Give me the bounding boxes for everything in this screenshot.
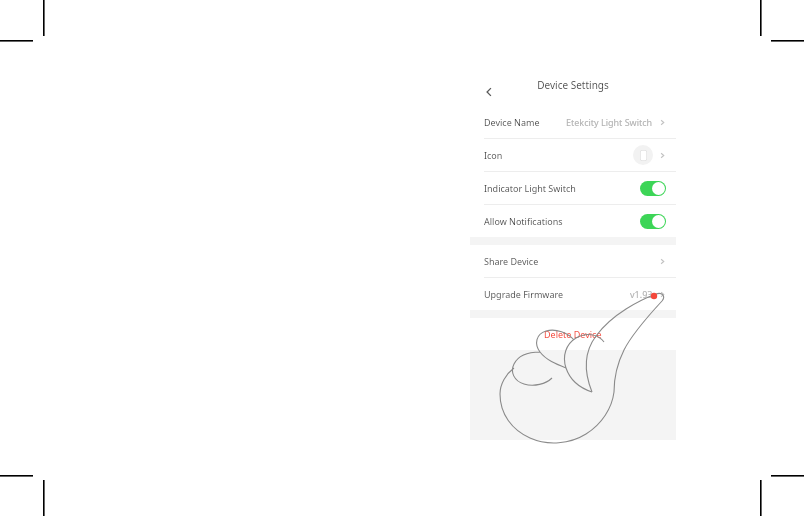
staticText: Device Name bbox=[484, 116, 540, 128]
button[interactable]: Delete Device bbox=[470, 318, 676, 350]
staticText: Indicator Light Switch bbox=[484, 182, 576, 194]
button[interactable]: Icon bbox=[470, 139, 676, 172]
staticText: Device Settings bbox=[537, 78, 609, 92]
button[interactable]: Back bbox=[478, 81, 500, 103]
button[interactable]: Allow Notifications bbox=[470, 205, 676, 237]
button[interactable]: Device Name bbox=[470, 106, 676, 139]
staticText: Share Device bbox=[484, 255, 539, 267]
staticText: v1.93 bbox=[630, 288, 653, 300]
staticText: Delete Device bbox=[544, 328, 602, 340]
button[interactable]: Indicator Light Switch bbox=[640, 181, 666, 196]
staticText: Allow Notifications bbox=[484, 215, 563, 227]
button[interactable]: Allow Notifications bbox=[640, 214, 666, 229]
button[interactable]: Upgrade Firmware bbox=[470, 278, 676, 310]
button[interactable]: Indicator Light Switch bbox=[470, 172, 676, 205]
staticText: Icon bbox=[484, 149, 503, 161]
staticText: Etekcity Light Switch bbox=[566, 116, 653, 128]
button[interactable]: Share Device bbox=[470, 245, 676, 278]
staticText: Upgrade Firmware bbox=[484, 288, 564, 300]
